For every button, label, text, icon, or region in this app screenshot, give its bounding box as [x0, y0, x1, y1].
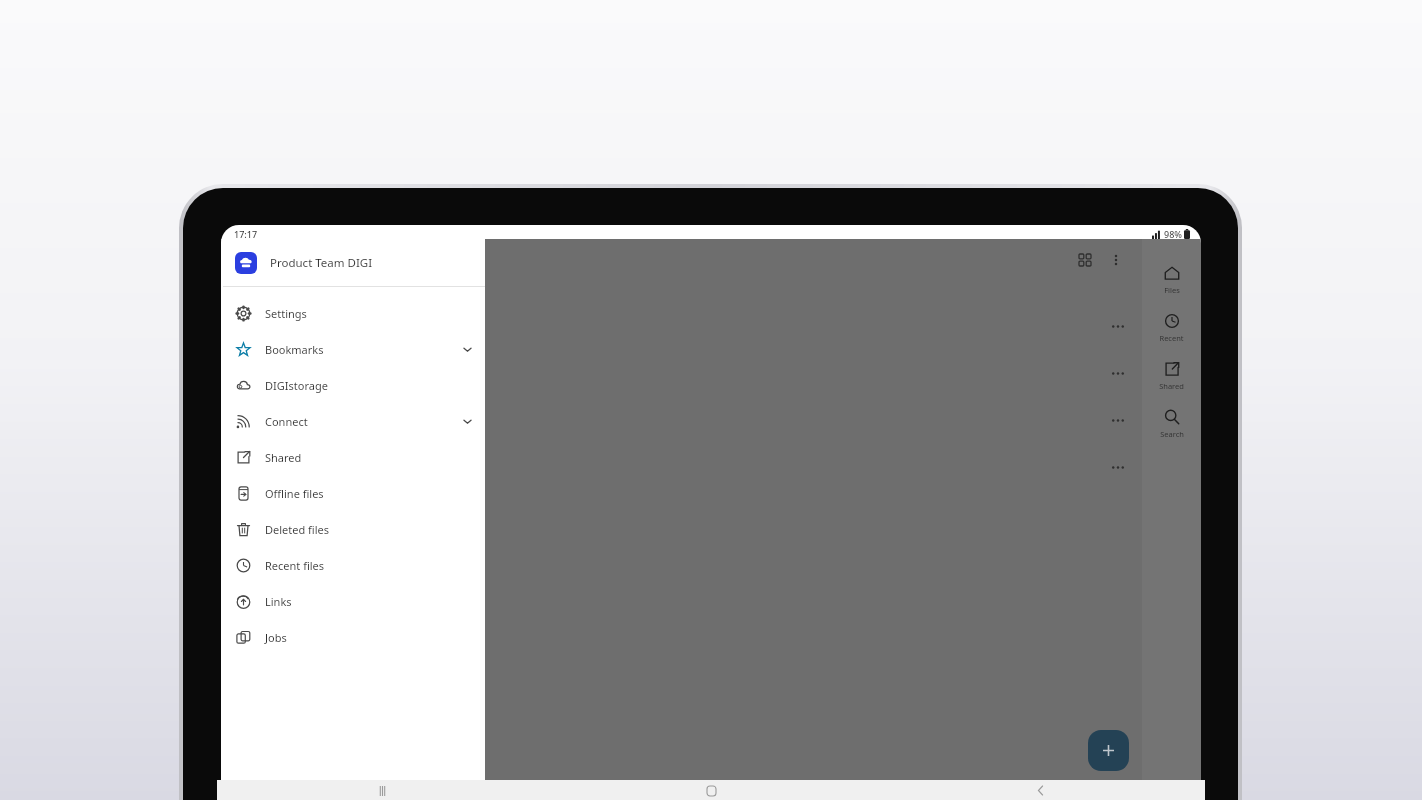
button[interactable]: Row options — [1106, 455, 1130, 479]
button[interactable]: Shared — [1142, 352, 1201, 400]
staticText: Recent — [1159, 333, 1184, 343]
button[interactable]: Jobs — [221, 619, 485, 655]
button[interactable]: Recents — [217, 780, 547, 800]
button[interactable]: Search — [1142, 400, 1201, 448]
button[interactable]: More options — [1105, 249, 1127, 271]
staticText: Bookmarks — [265, 342, 324, 357]
button[interactable]: Deleted files — [221, 511, 485, 547]
button[interactable]: Connect — [221, 403, 485, 439]
staticText: 98% — [1164, 228, 1182, 240]
staticText: Shared — [1159, 381, 1184, 391]
button[interactable]: Row options — [1106, 361, 1130, 385]
button[interactable]: Links — [221, 583, 485, 619]
button[interactable]: Row options — [1106, 408, 1130, 432]
staticText: Product Team DIGI — [270, 255, 373, 271]
button[interactable]: Recent — [1142, 304, 1201, 352]
staticText: Recent files — [265, 558, 325, 573]
staticText: Offline files — [265, 486, 324, 501]
button[interactable]: Add — [1088, 730, 1129, 771]
staticText: Connect — [265, 414, 308, 429]
staticText: Links — [265, 594, 292, 609]
staticText: 17:17 — [234, 228, 258, 240]
staticText: Deleted files — [265, 522, 330, 537]
staticText: Settings — [265, 306, 307, 321]
button[interactable]: Recent files — [221, 547, 485, 583]
button[interactable]: DIGIstorage — [221, 367, 485, 403]
staticText: DIGIstorage — [265, 378, 328, 393]
button[interactable]: Settings — [221, 295, 485, 331]
button[interactable]: Row options — [1106, 314, 1130, 338]
staticText: Jobs — [265, 630, 287, 645]
button[interactable]: Back — [876, 780, 1205, 800]
button[interactable]: Bookmarks — [221, 331, 485, 367]
staticText: Search — [1160, 429, 1184, 439]
staticText: Shared — [265, 450, 302, 465]
button[interactable]: Grid view — [1074, 249, 1096, 271]
button[interactable]: Home — [547, 780, 876, 800]
button[interactable]: Shared — [221, 439, 485, 475]
staticText: Files — [1164, 285, 1180, 295]
button[interactable]: Product Team DIGI — [221, 239, 485, 286]
button[interactable]: Offline files — [221, 475, 485, 511]
button[interactable]: Files — [1142, 256, 1201, 304]
